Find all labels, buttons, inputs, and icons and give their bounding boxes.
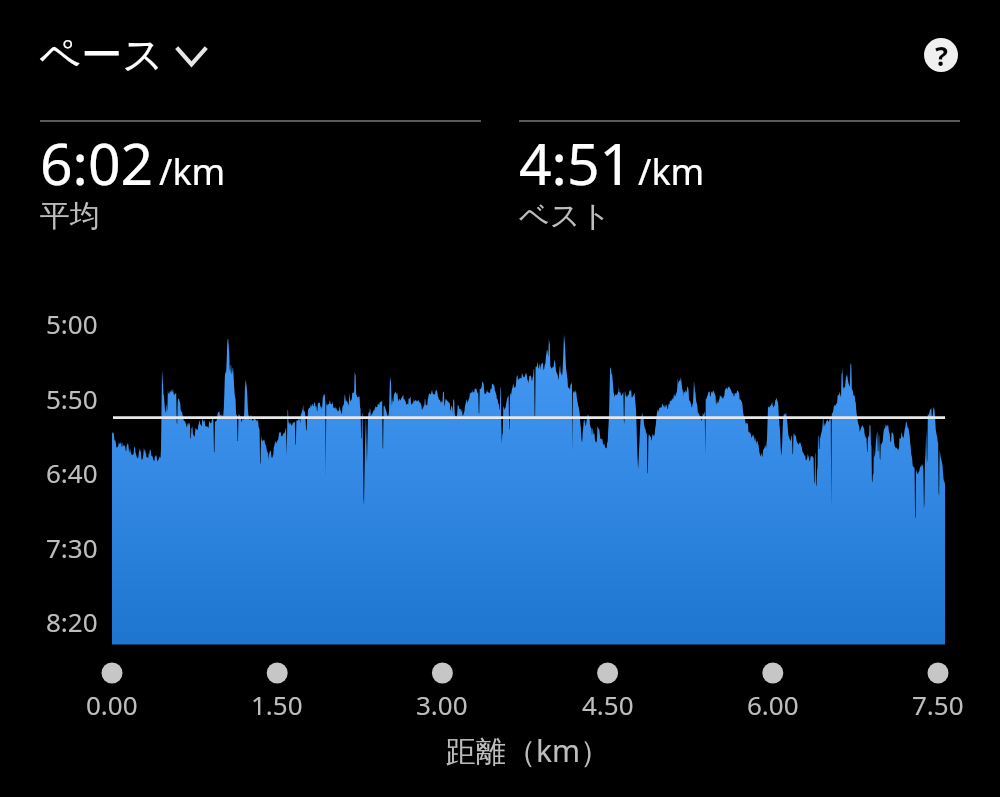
staticText: 7:30 bbox=[46, 530, 98, 565]
staticText: 1.50 bbox=[251, 687, 303, 722]
staticText: ? bbox=[935, 37, 948, 71]
button[interactable]: ペース bbox=[34, 25, 213, 87]
button[interactable]: 6:02 bbox=[40, 116, 481, 240]
button[interactable]: 4:51 bbox=[519, 116, 960, 240]
staticText: ベスト bbox=[519, 197, 612, 235]
staticText: /km bbox=[159, 147, 226, 196]
staticText: 4.50 bbox=[582, 687, 634, 722]
staticText: 7.50 bbox=[912, 687, 964, 722]
staticText: 5:00 bbox=[46, 306, 98, 341]
staticText: 6:02 bbox=[40, 124, 154, 202]
staticText: 距離（km） bbox=[446, 730, 611, 771]
button[interactable]: Help bbox=[924, 38, 958, 72]
staticText: 3.00 bbox=[416, 687, 468, 722]
staticText: 5:50 bbox=[46, 381, 98, 416]
staticText: ペース bbox=[39, 30, 164, 82]
staticText: /km bbox=[638, 147, 705, 196]
staticText: 8:20 bbox=[46, 604, 98, 639]
staticText: 平均 bbox=[40, 197, 100, 235]
staticText: 6:40 bbox=[46, 455, 98, 490]
staticText: 6.00 bbox=[747, 687, 799, 722]
staticText: 4:51 bbox=[519, 124, 633, 202]
staticText: 0.00 bbox=[86, 687, 138, 722]
